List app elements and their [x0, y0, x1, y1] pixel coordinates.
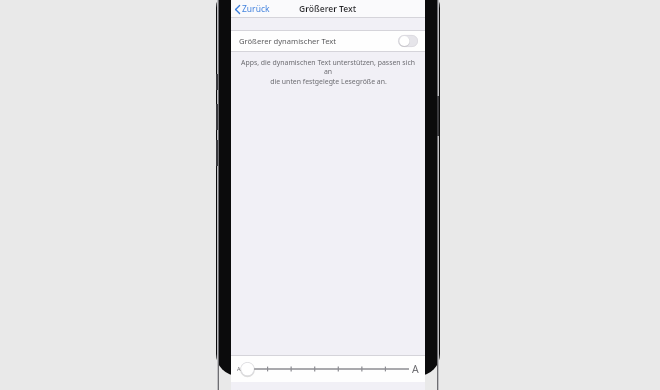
staticText: Zurück — [242, 3, 270, 15]
button[interactable]: Größerer dynamischer Text ein/aus — [398, 35, 418, 47]
staticText: die unten festgelegte Lesegröße an. — [270, 77, 387, 86]
staticText: A — [412, 362, 419, 376]
button[interactable]: Zurück — [233, 1, 272, 17]
button[interactable]: Textgröße Schieberegler — [241, 355, 412, 382]
staticText: A — [237, 365, 241, 372]
staticText: Größerer dynamischer Text — [239, 36, 337, 46]
staticText: Apps, die dynamischen Text unterstützen,… — [241, 58, 415, 76]
staticText: Größerer Text — [299, 3, 357, 15]
button[interactable]: Größerer dynamischer Text — [231, 30, 425, 52]
